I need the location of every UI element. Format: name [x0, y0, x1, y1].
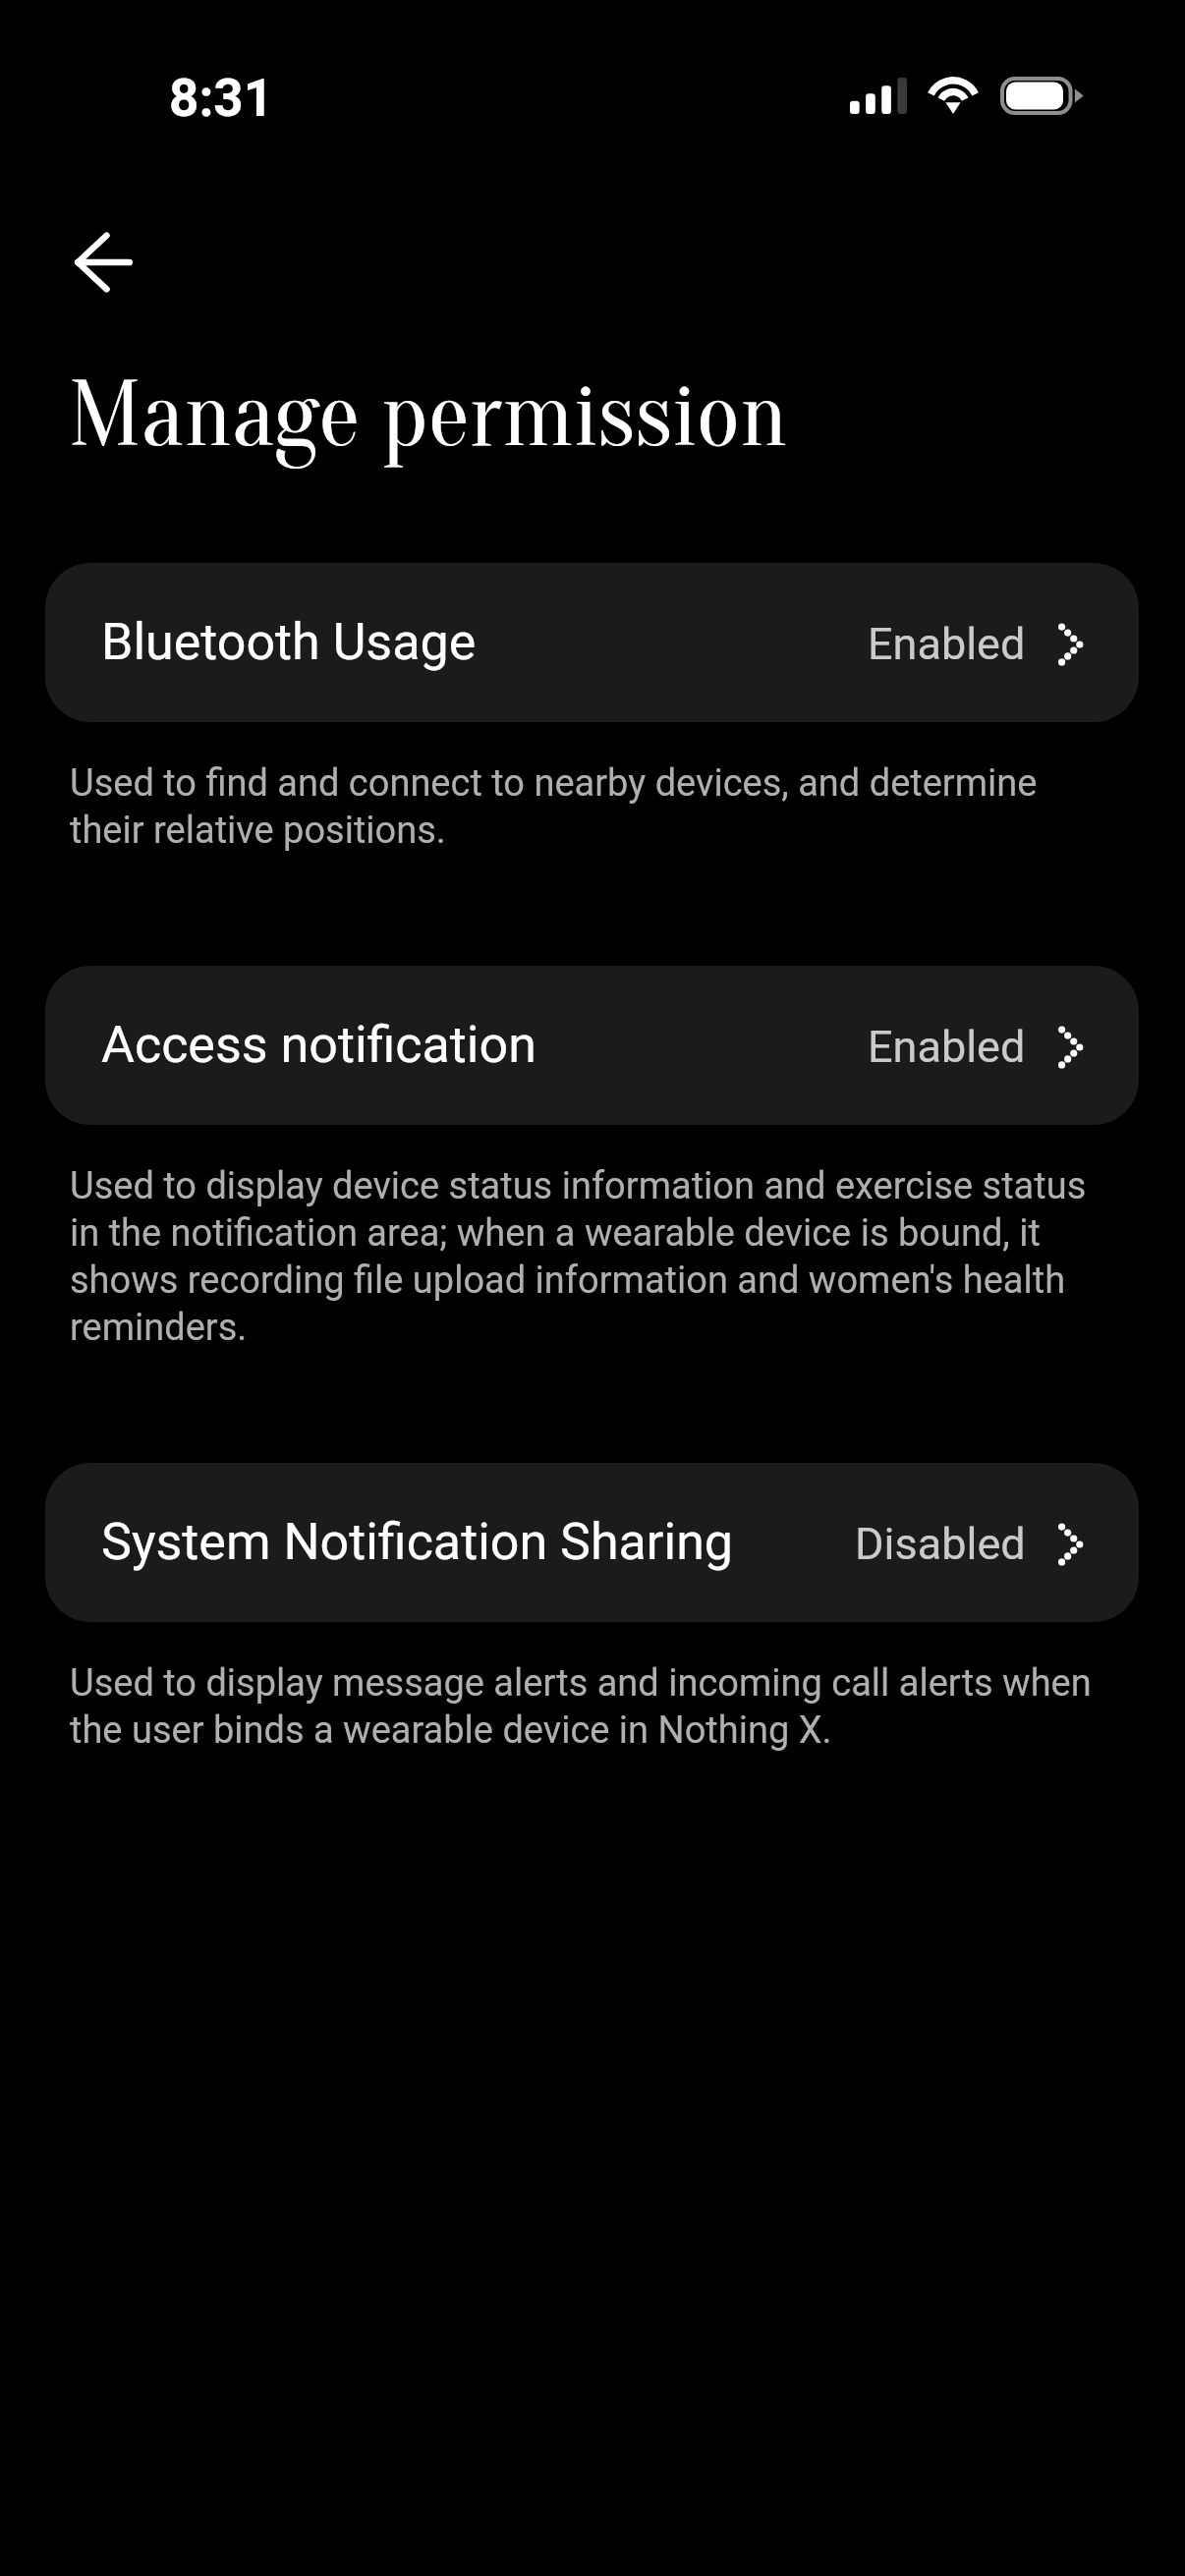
staticText: Manage permission	[69, 354, 788, 472]
button[interactable]: System Notification Sharing	[45, 1463, 1139, 1622]
staticText: Used to display device status informatio…	[70, 1161, 1101, 1350]
staticText: Access notification	[101, 1015, 536, 1075]
button[interactable]: Access notification	[45, 966, 1139, 1125]
staticText: Enabled	[868, 1021, 1026, 1073]
button[interactable]: Back	[44, 203, 162, 321]
button[interactable]: Bluetooth Usage	[45, 563, 1139, 722]
staticText: Bluetooth Usage	[101, 612, 477, 672]
staticText: Used to find and connect to nearby devic…	[70, 758, 1101, 853]
staticText: 8:31	[169, 68, 274, 129]
staticText: Disabled	[855, 1518, 1026, 1570]
staticText: System Notification Sharing	[101, 1512, 734, 1572]
staticText: Used to display message alerts and incom…	[70, 1658, 1101, 1753]
staticText: Enabled	[868, 618, 1026, 670]
